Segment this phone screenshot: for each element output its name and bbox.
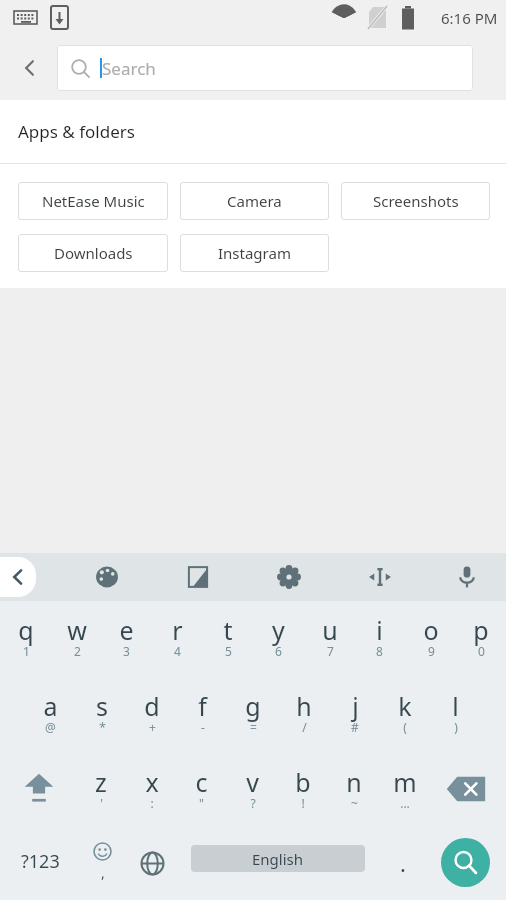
button[interactable]: Delete (436, 765, 496, 827)
staticText: Instagram (218, 243, 291, 263)
button[interactable]: u (304, 613, 355, 675)
button[interactable]: English (191, 845, 365, 872)
button[interactable]: m (379, 765, 430, 827)
staticText: 4 (174, 643, 181, 659)
staticText: l (452, 689, 459, 723)
staticText: . (400, 848, 406, 878)
staticText: 1 (23, 643, 30, 659)
button[interactable]: n (328, 765, 379, 827)
staticText: ) (454, 719, 458, 735)
button[interactable]: f (177, 689, 228, 751)
staticText: q (18, 613, 34, 647)
staticText: - (201, 719, 205, 735)
button[interactable]: Shift (8, 765, 70, 827)
staticText: m (393, 765, 417, 799)
staticText: Screenshots (373, 191, 459, 211)
button[interactable]: Instagram (180, 234, 329, 272)
staticText: Search (102, 57, 156, 80)
button[interactable]: q (0, 613, 51, 675)
button[interactable]: Camera (180, 182, 329, 220)
staticText: Apps & folders (18, 120, 135, 143)
staticText: y (272, 613, 285, 647)
staticText: i (376, 613, 383, 647)
staticText: 8 (376, 643, 383, 659)
staticText: 3 (123, 643, 130, 659)
button[interactable]: h (278, 689, 329, 751)
button[interactable]: Downloads (18, 234, 168, 272)
button[interactable]: d (126, 689, 177, 751)
button[interactable]: b (277, 765, 328, 827)
staticText: Downloads (54, 243, 133, 263)
button[interactable]: a (25, 689, 76, 751)
button[interactable]: w (51, 613, 102, 675)
button[interactable]: v (227, 765, 278, 827)
staticText: v (246, 765, 259, 799)
staticText: f (198, 689, 207, 723)
staticText: g (245, 689, 261, 723)
staticText: p (473, 613, 489, 647)
staticText: k (398, 689, 412, 723)
staticText: j (352, 689, 359, 723)
staticText: d (144, 689, 160, 723)
staticText: Camera (227, 191, 282, 211)
staticText: 6:16 PM (441, 8, 498, 28)
button[interactable]: Search (57, 45, 473, 91)
button[interactable]: Change language (128, 841, 176, 885)
button[interactable]: l (430, 689, 481, 751)
button[interactable]: Resize keyboard (176, 555, 220, 599)
button[interactable]: y (253, 613, 304, 675)
staticText: 7 (327, 643, 334, 659)
staticText: z (95, 765, 107, 799)
button[interactable]: x (126, 765, 177, 827)
button[interactable]: Emoji (78, 837, 126, 885)
button[interactable]: Hide keyboard (0, 557, 36, 597)
button[interactable]: Back (8, 46, 52, 90)
staticText: t (223, 613, 233, 647)
button[interactable]: Settings (267, 555, 311, 599)
staticText: u (322, 613, 338, 647)
button[interactable]: Search (441, 838, 490, 887)
button[interactable]: s (76, 689, 127, 751)
button[interactable]: c (176, 765, 227, 827)
staticText: @ (45, 719, 56, 735)
staticText: s (96, 689, 108, 723)
button[interactable]: Theme (85, 555, 129, 599)
staticText: 9 (428, 643, 435, 659)
button[interactable]: g (227, 689, 278, 751)
button[interactable]: . (381, 841, 425, 885)
button[interactable]: o (405, 613, 456, 675)
button[interactable]: NetEase Music (18, 182, 168, 220)
staticText: ~ (351, 795, 358, 811)
staticText: # (351, 719, 359, 735)
staticText: = (250, 719, 257, 735)
staticText: / (302, 719, 307, 735)
button[interactable]: t (202, 613, 253, 675)
staticText: * (99, 719, 106, 735)
staticText: 0 (478, 643, 485, 659)
button[interactable]: Cursor control (358, 555, 402, 599)
button[interactable]: Screenshots (341, 182, 490, 220)
staticText: x (145, 765, 159, 799)
staticText: o (423, 613, 439, 647)
button[interactable]: Voice input (445, 555, 489, 599)
staticText: ?123 (21, 849, 60, 874)
button[interactable]: z (75, 765, 126, 827)
button[interactable]: p (455, 613, 506, 675)
staticText: a (43, 689, 58, 723)
staticText: b (295, 765, 311, 799)
button[interactable]: r (152, 613, 203, 675)
button[interactable]: ?123 (8, 843, 72, 879)
button[interactable]: e (101, 613, 152, 675)
button[interactable]: k (379, 689, 430, 751)
staticText: ? (250, 795, 256, 811)
button[interactable]: j (329, 689, 380, 751)
staticText: c (195, 765, 208, 799)
staticText: w (67, 613, 87, 647)
staticText: h (296, 689, 312, 723)
staticText: NetEase Music (42, 191, 145, 211)
staticText: ... (400, 795, 410, 811)
staticText: 2 (74, 643, 81, 659)
staticText: 6 (275, 643, 282, 659)
staticText: n (346, 765, 362, 799)
button[interactable]: i (354, 613, 405, 675)
